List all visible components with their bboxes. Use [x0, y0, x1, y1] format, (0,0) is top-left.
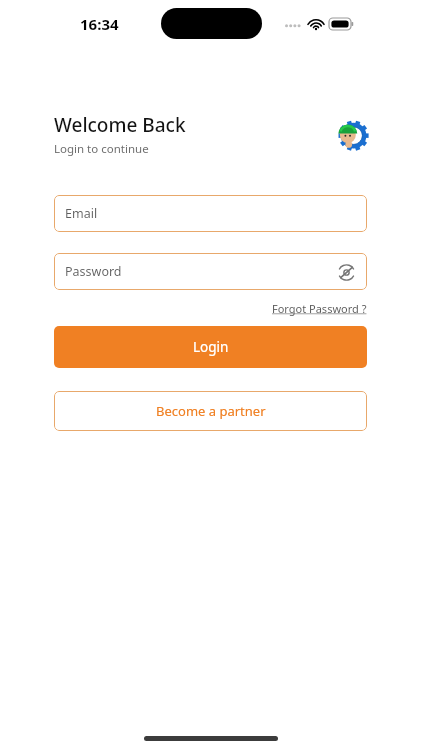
staticText: Login to continue [54, 141, 149, 157]
button[interactable]: Forgot Password ? [272, 301, 367, 316]
staticText: Password [65, 263, 336, 280]
staticText: Email [65, 205, 98, 222]
button[interactable]: Email [54, 195, 367, 232]
staticText: Forgot Password ? [272, 301, 367, 316]
button[interactable]: Show password [336, 262, 356, 282]
staticText: 16:34 [80, 14, 119, 34]
button[interactable]: Login [54, 326, 367, 368]
staticText: Login [193, 338, 229, 356]
button[interactable]: Become a partner [54, 391, 367, 431]
other: App logo [335, 119, 367, 151]
staticText: Become a partner [156, 402, 266, 420]
staticText: Welcome Back [54, 112, 186, 138]
button[interactable]: Password [54, 253, 367, 290]
